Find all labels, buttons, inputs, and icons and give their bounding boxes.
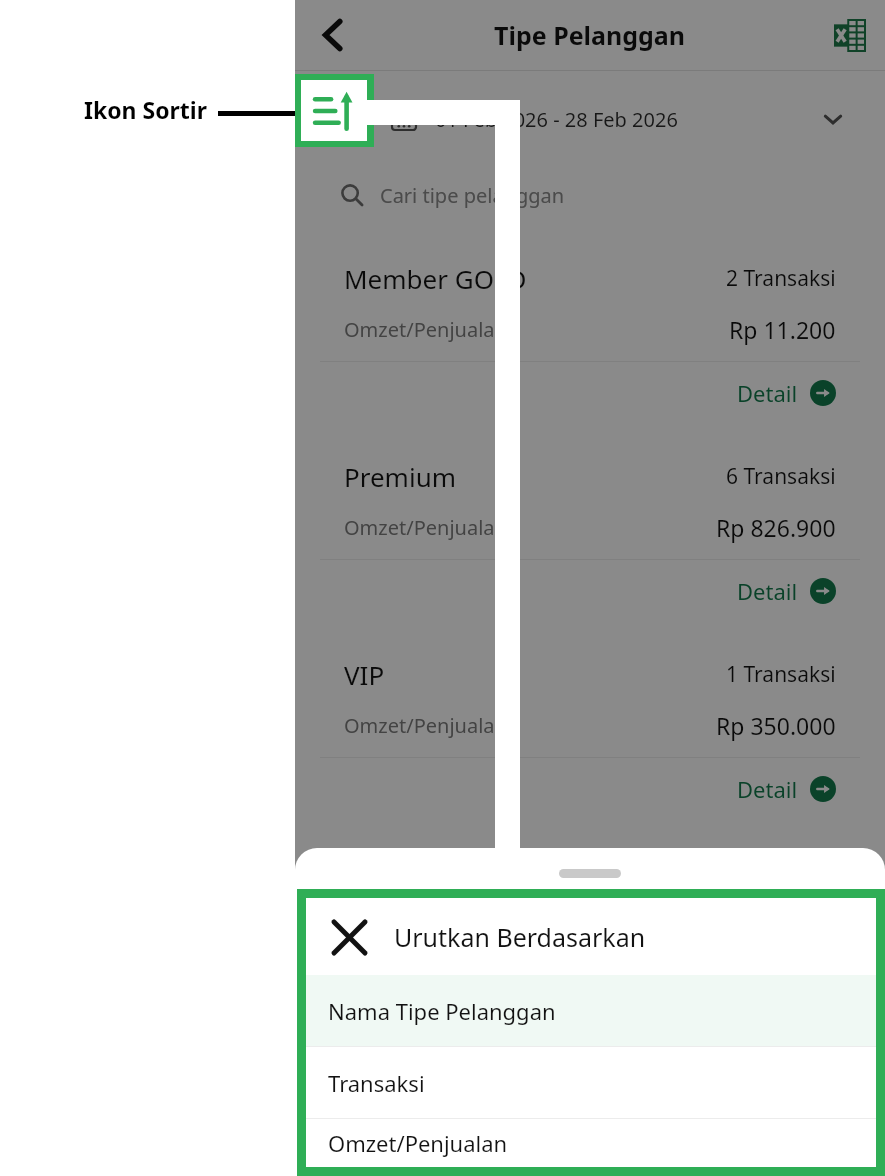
- staticText: Omzet/Penjualan: [344, 712, 507, 739]
- staticText: Omzet/Penjualan: [328, 1128, 508, 1158]
- staticText: Rp 350.000: [716, 710, 836, 741]
- staticText: Detail: [737, 378, 798, 408]
- button[interactable]: VIP: [320, 640, 860, 820]
- button[interactable]: Ekspor Excel: [825, 11, 873, 59]
- staticText: Ikon Sortir: [84, 94, 207, 125]
- staticText: Detail: [737, 774, 798, 804]
- staticText: Urutkan Berdasarkan: [394, 920, 646, 954]
- staticText: Cari tipe pelanggan: [380, 182, 565, 209]
- staticText: Detail: [737, 972, 798, 1002]
- staticText: 01 Feb 2026 - 28 Feb 2026: [435, 106, 678, 133]
- button[interactable]: Premium: [320, 442, 860, 622]
- button[interactable]: 01 Feb 2026 - 28 Feb 2026: [373, 89, 862, 149]
- staticText: Omzet/Penjualan: [344, 910, 507, 937]
- staticText: Rp 826.900: [716, 512, 836, 543]
- button[interactable]: shopeefood: [320, 838, 860, 1018]
- button[interactable]: Cari tipe pelanggan: [320, 166, 860, 224]
- button[interactable]: Tutup: [328, 916, 370, 958]
- button[interactable]: Ikon Sortir: [301, 80, 367, 141]
- staticText: Member GOLD: [344, 261, 527, 296]
- staticText: Detail: [737, 576, 798, 606]
- staticText: Premium: [344, 459, 457, 494]
- staticText: Transaksi: [328, 1068, 425, 1098]
- button[interactable]: Transaksi: [306, 1047, 876, 1118]
- button[interactable]: Detail: [737, 378, 836, 408]
- staticText: 2 Transaksi: [726, 264, 836, 293]
- staticText: Omzet/Penjualan: [344, 316, 507, 343]
- staticText: Nama Tipe Pelanggan: [328, 996, 556, 1026]
- staticText: Tipe Pelanggan: [494, 18, 686, 52]
- button[interactable]: Detail: [737, 576, 836, 606]
- staticText: 6 Transaksi: [726, 462, 836, 491]
- staticText: shopeefood: [344, 855, 490, 890]
- button[interactable]: Detail: [737, 774, 836, 804]
- button[interactable]: Detail: [737, 972, 836, 1002]
- button[interactable]: Nama Tipe Pelanggan: [306, 975, 876, 1046]
- staticText: Omzet/Penjualan: [344, 514, 507, 541]
- staticText: VIP: [344, 657, 385, 692]
- button[interactable]: Omzet/Penjualan: [306, 1119, 876, 1167]
- staticText: Rp 11.200: [729, 314, 836, 345]
- button[interactable]: Member GOLD: [320, 244, 860, 424]
- staticText: 1 Transaksi: [726, 660, 836, 689]
- button[interactable]: Kembali: [307, 9, 359, 61]
